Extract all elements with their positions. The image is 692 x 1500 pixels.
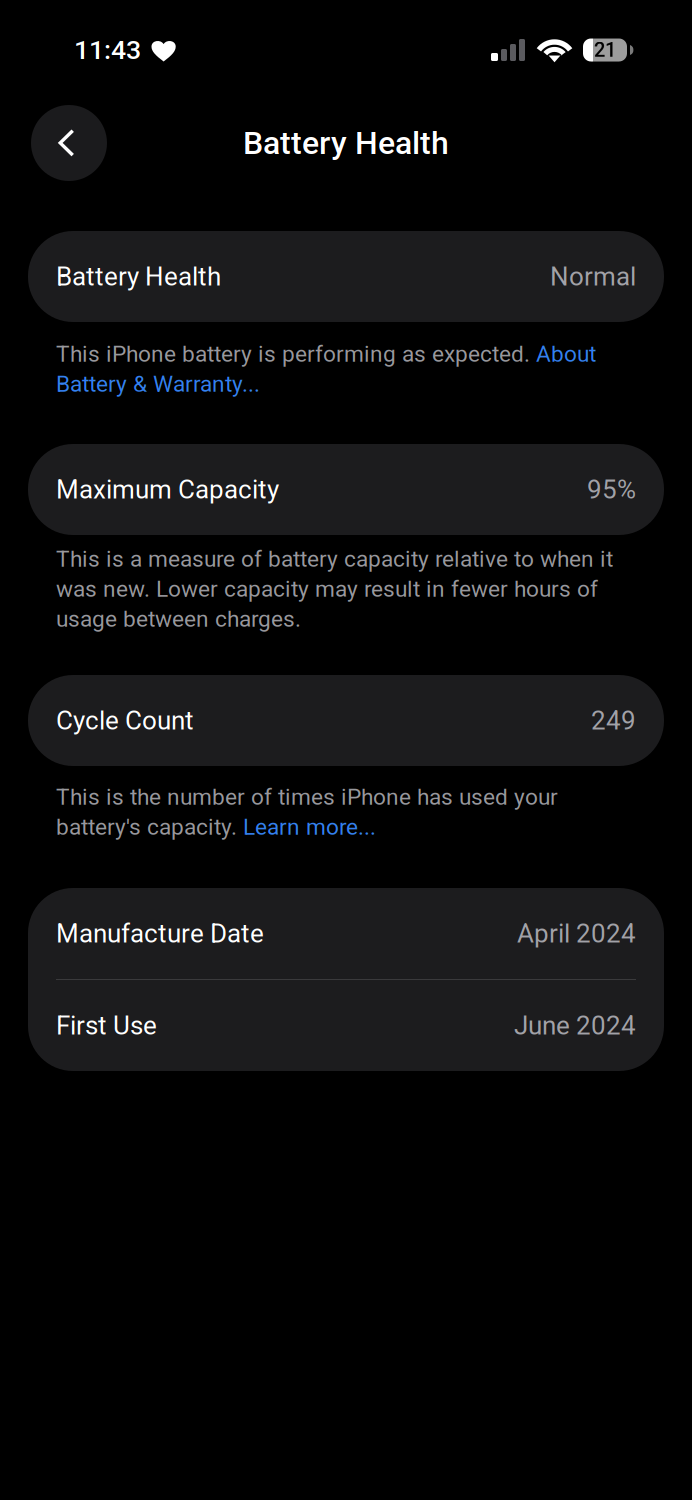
staticText: Normal bbox=[550, 261, 636, 292]
button[interactable]: Maximum Capacity bbox=[28, 444, 664, 535]
staticText: This is a measure of battery capacity re… bbox=[56, 546, 613, 572]
staticText: First Use bbox=[56, 1010, 157, 1041]
staticText: Battery & Warranty... bbox=[56, 371, 260, 397]
staticText: 21 bbox=[594, 38, 616, 62]
staticText: About bbox=[536, 341, 596, 367]
button[interactable]: Manufacture Date bbox=[28, 888, 664, 979]
staticText: 11:43 bbox=[74, 34, 141, 66]
staticText: April 2024 bbox=[517, 918, 636, 949]
staticText: June 2024 bbox=[514, 1010, 636, 1041]
button[interactable]: Back bbox=[31, 105, 107, 181]
button[interactable]: First Use bbox=[28, 980, 664, 1071]
staticText: Cycle Count bbox=[56, 705, 194, 736]
staticText: This is the number of times iPhone has u… bbox=[56, 784, 558, 810]
staticText: This iPhone battery is performing as exp… bbox=[56, 341, 536, 367]
staticText: Manufacture Date bbox=[56, 918, 264, 949]
staticText: Battery Health bbox=[243, 124, 449, 162]
button[interactable]: Battery Health bbox=[28, 231, 664, 322]
button[interactable]: Cycle Count bbox=[28, 675, 664, 766]
staticText: battery's capacity. bbox=[56, 814, 243, 840]
staticText: 249 bbox=[591, 705, 636, 736]
staticText: usage between charges. bbox=[56, 606, 301, 632]
staticText: Maximum Capacity bbox=[56, 474, 279, 505]
staticText: 95% bbox=[587, 474, 636, 505]
staticText: Learn more... bbox=[243, 814, 376, 840]
staticText: Battery Health bbox=[56, 261, 221, 292]
staticText: was new. Lower capacity may result in fe… bbox=[56, 576, 598, 602]
